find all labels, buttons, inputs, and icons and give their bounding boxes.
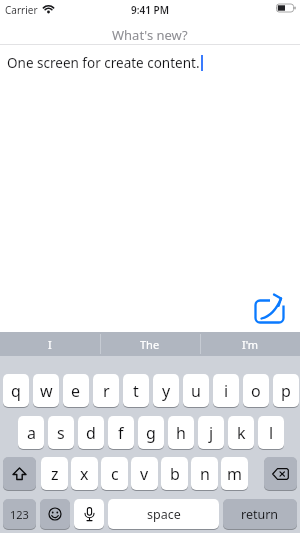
staticText: g	[146, 422, 156, 444]
button[interactable]: return	[223, 499, 297, 529]
staticText: w	[40, 380, 53, 402]
button[interactable]: v	[131, 457, 158, 490]
button[interactable]: b	[161, 457, 188, 490]
button[interactable]: k	[228, 416, 254, 449]
staticText: What's new?	[112, 26, 188, 44]
button[interactable]: I'm	[200, 332, 300, 356]
staticText: h	[176, 422, 186, 444]
button[interactable]	[40, 499, 70, 529]
button[interactable]: y	[153, 374, 179, 407]
button[interactable]: u	[183, 374, 209, 407]
staticText: m	[227, 463, 242, 485]
button[interactable]: q	[3, 374, 29, 407]
staticText: The	[140, 337, 160, 352]
staticText: return	[241, 506, 279, 523]
button[interactable]: 123	[3, 499, 36, 529]
button[interactable]: l	[258, 416, 284, 449]
staticText: v	[140, 463, 149, 485]
button[interactable]: c	[101, 457, 128, 490]
staticText: space	[147, 506, 181, 523]
staticText: a	[27, 422, 36, 444]
button[interactable]: d	[78, 416, 104, 449]
staticText: y	[162, 380, 171, 402]
staticText: I	[48, 337, 52, 352]
button[interactable]: m	[221, 457, 248, 490]
staticText: z	[51, 463, 59, 485]
staticText: d	[86, 422, 96, 444]
staticText: p	[281, 380, 291, 402]
button[interactable]	[74, 499, 104, 529]
staticText: x	[80, 463, 89, 485]
staticText: One screen for create content.	[7, 54, 200, 72]
button[interactable]: r	[93, 374, 119, 407]
staticText: q	[11, 380, 21, 402]
button[interactable]: o	[243, 374, 269, 407]
button[interactable]	[251, 289, 289, 327]
button[interactable]: f	[108, 416, 134, 449]
staticText: s	[57, 422, 65, 444]
button[interactable]: a	[18, 416, 44, 449]
button[interactable]: g	[138, 416, 164, 449]
button[interactable]: h	[168, 416, 194, 449]
staticText: u	[191, 380, 201, 402]
button[interactable]: e	[63, 374, 89, 407]
staticText: I'm	[242, 337, 259, 352]
staticText: c	[111, 463, 119, 485]
button[interactable]	[3, 457, 36, 490]
staticText: t	[133, 380, 139, 402]
staticText: 123	[10, 507, 29, 522]
button[interactable]: p	[273, 374, 299, 407]
button[interactable]: x	[71, 457, 98, 490]
staticText: b	[170, 463, 180, 485]
staticText: j	[209, 422, 214, 444]
button[interactable]: s	[48, 416, 74, 449]
staticText: l	[269, 422, 274, 444]
staticText: o	[251, 380, 261, 402]
button[interactable]: n	[191, 457, 218, 490]
staticText: r	[103, 380, 110, 402]
staticText: 9:41 PM	[131, 3, 169, 17]
button[interactable]: The	[100, 332, 200, 356]
button[interactable]: j	[198, 416, 224, 449]
staticText: e	[71, 380, 81, 402]
button[interactable]: I	[0, 332, 100, 356]
button[interactable]: space	[108, 499, 219, 529]
staticText: f	[118, 422, 124, 444]
staticText: n	[200, 463, 210, 485]
staticText: i	[224, 380, 229, 402]
button[interactable]: z	[41, 457, 68, 490]
button[interactable]: i	[213, 374, 239, 407]
button[interactable]: t	[123, 374, 149, 407]
staticText: Carrier	[5, 3, 38, 17]
staticText: k	[237, 422, 246, 444]
button[interactable]	[264, 457, 297, 490]
button[interactable]: w	[33, 374, 59, 407]
